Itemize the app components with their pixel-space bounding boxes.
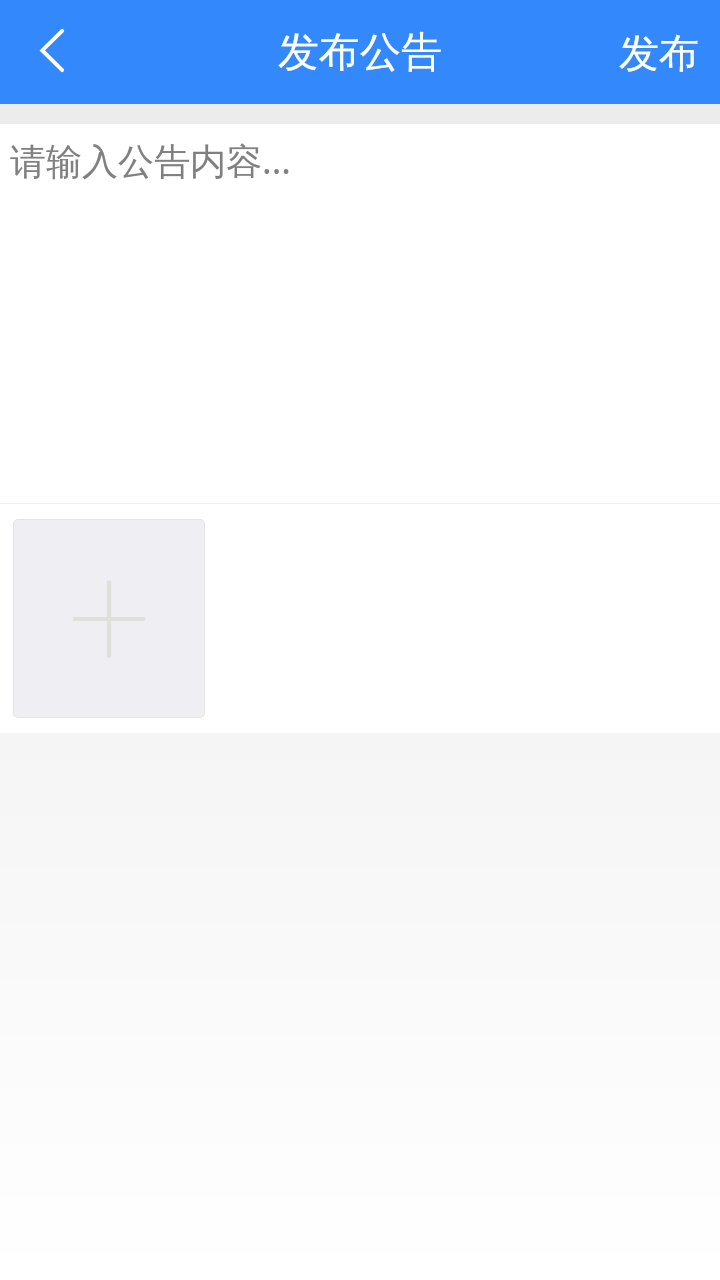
button[interactable]: 发布 [598, 8, 720, 98]
staticText: 发布公告 [278, 27, 442, 79]
button[interactable]: Add photo [13, 519, 205, 718]
staticText: 请输入公告内容... [10, 136, 291, 185]
staticText: 发布 [619, 28, 699, 78]
button[interactable]: Back [0, 0, 104, 104]
button[interactable]: 请输入公告内容... [0, 124, 720, 503]
